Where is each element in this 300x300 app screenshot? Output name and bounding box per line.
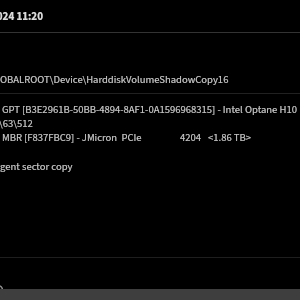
button[interactable]: Intelligent sector copy (0, 150, 300, 180)
staticText: OBALROOT\Device\HarddiskVolumeShadowCopy… (0, 72, 229, 87)
staticText: \63\512 (0, 116, 33, 131)
button[interactable]: MBR disk JMicron PCIe 1.86 TB (0, 122, 300, 150)
staticText: GPT [B3E2961B-50BB-4894-8AF1-0A159696831… (2, 102, 297, 117)
staticText: 2024 11:20 (0, 9, 43, 25)
button[interactable]: Snapshot 2024 11:20 (0, 0, 300, 32)
button[interactable]: GPT disk Intel Optane H10 (0, 94, 300, 122)
staticText: 4204 (180, 130, 202, 145)
other: Working (0, 285, 4, 291)
staticText: gent sector copy (0, 159, 73, 174)
staticText: MBR [F837FBC9] - JMicron PCIe (2, 130, 142, 145)
staticText: <1.86 TB> (208, 130, 251, 145)
button[interactable]: Selected shadow copy volume (0, 33, 300, 93)
